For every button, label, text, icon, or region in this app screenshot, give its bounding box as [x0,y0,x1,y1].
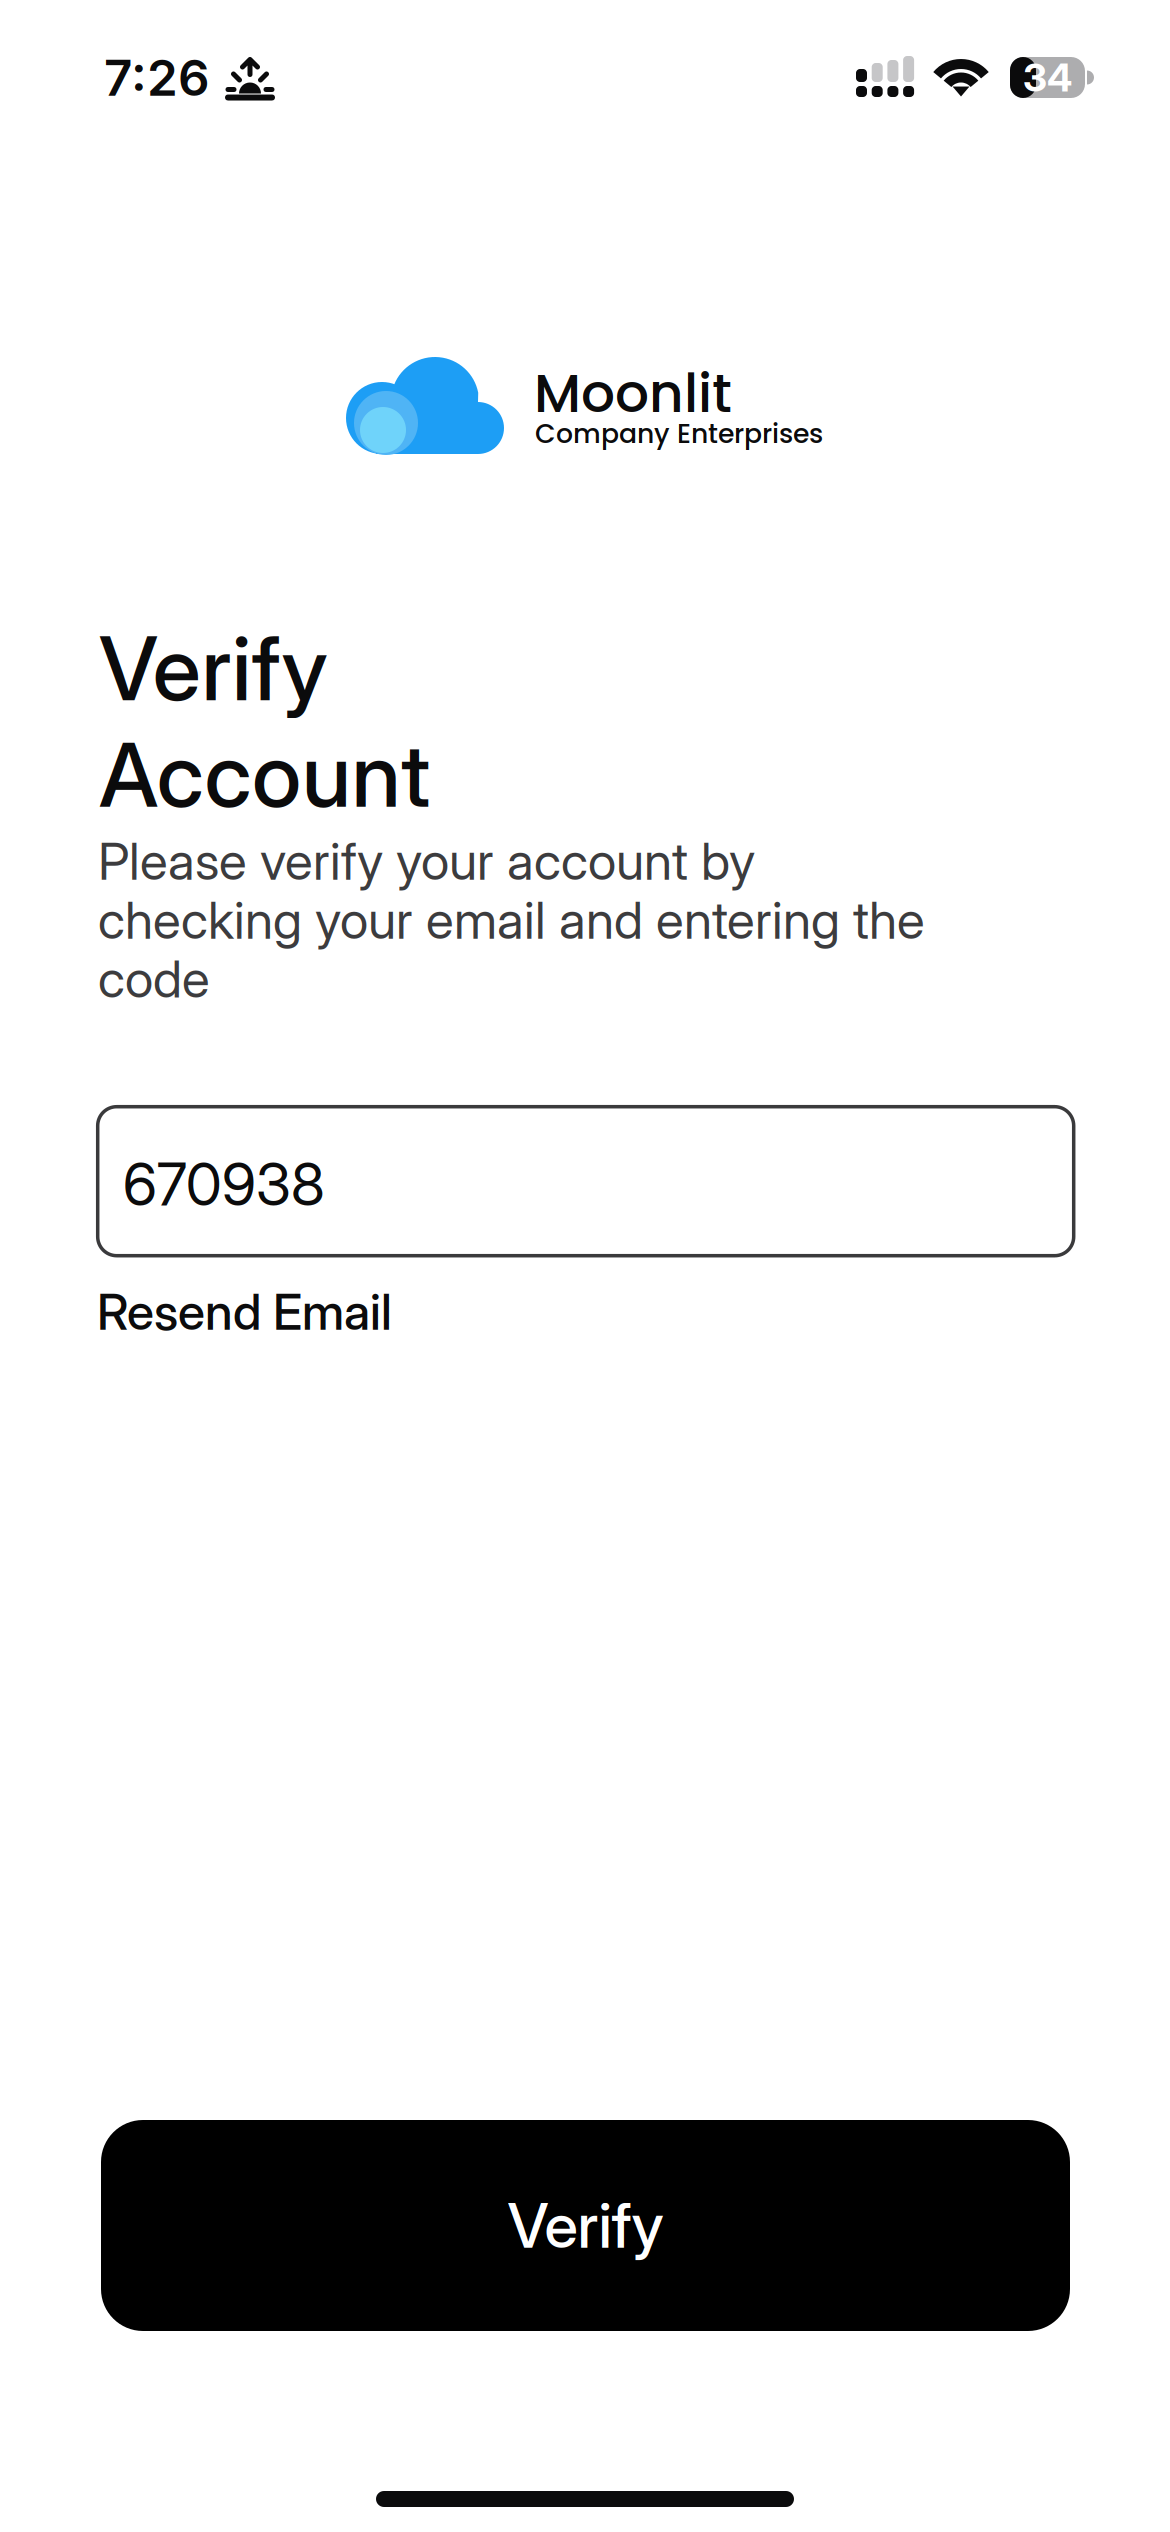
staticText: Verify [507,2188,663,2263]
staticText: Company Enterprises [535,415,823,452]
button[interactable]: Verify [101,2120,1070,2331]
staticText: 670938 [123,1149,325,1220]
staticText: Please verify your account by checking y… [98,830,925,1010]
staticText: Verify Account [99,615,681,721]
staticText: 34 [1023,54,1072,101]
staticText: Moonlit [534,356,732,431]
staticText: Resend Email [97,1282,392,1342]
button[interactable]: Resend Email [97,1282,392,1342]
button[interactable]: 670938 [98,1107,1074,1256]
staticText: 7:26 [104,48,210,108]
